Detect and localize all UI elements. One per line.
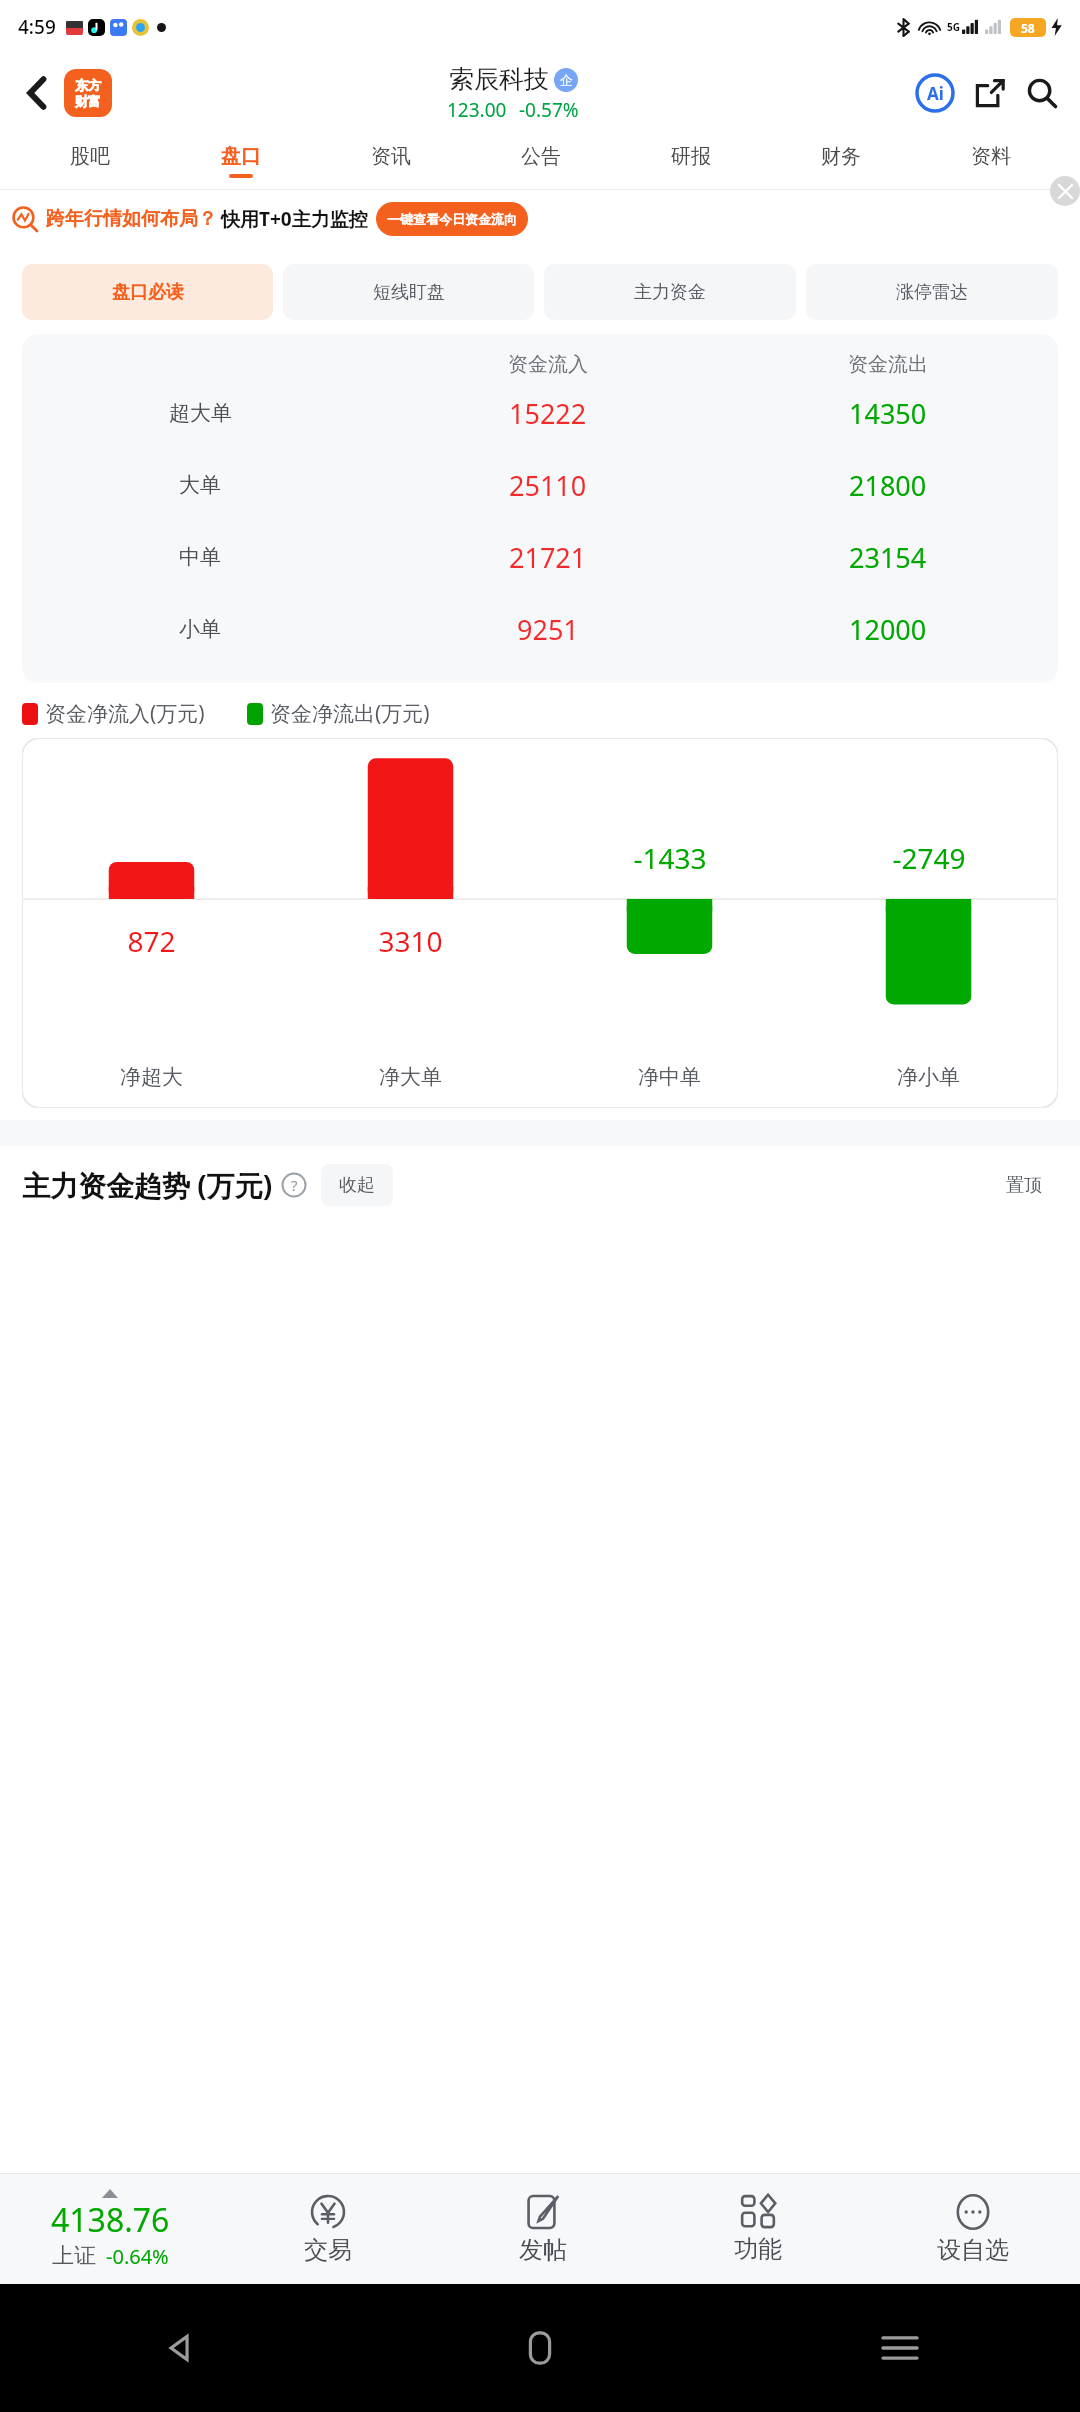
staticText: -0.57% xyxy=(519,97,579,123)
button[interactable]: 功能 xyxy=(650,2174,865,2284)
staticText: -1433 xyxy=(633,839,707,877)
button[interactable]: 大单 xyxy=(22,449,1058,521)
staticText: 资料 xyxy=(971,144,1011,169)
button[interactable]: 置顶 xyxy=(990,1164,1058,1206)
button[interactable]: Close xyxy=(1050,176,1080,206)
staticText: 上证 xyxy=(52,2242,96,2270)
staticText: 股吧 xyxy=(70,144,110,169)
staticText: 15222 xyxy=(509,395,587,432)
staticText: 4138.76 xyxy=(51,2198,170,2242)
staticText: 交易 xyxy=(304,2235,352,2265)
staticText: 58 xyxy=(1021,20,1035,36)
button[interactable]: 中单 xyxy=(22,521,1058,593)
button[interactable]: Back xyxy=(14,70,60,116)
button[interactable]: 跨年行情如何布局？ xyxy=(12,190,1070,248)
staticText: 12000 xyxy=(849,611,927,648)
staticText: 123.00 xyxy=(447,97,507,123)
staticText: 主力资金趋势 (万元) xyxy=(22,1166,273,1204)
staticText: 净超大 xyxy=(120,1064,183,1090)
staticText: 4:59 xyxy=(18,14,56,40)
staticText: 索辰科技 xyxy=(449,64,549,95)
staticText: 大单 xyxy=(179,472,221,498)
staticText: 短线盯盘 xyxy=(373,281,445,304)
staticText: 研报 xyxy=(671,144,711,169)
button[interactable]: 财务 xyxy=(766,132,916,190)
staticText: 25110 xyxy=(509,467,587,504)
button[interactable]: 资料 xyxy=(916,132,1066,190)
staticText: 净小单 xyxy=(897,1064,960,1090)
staticText: 23154 xyxy=(849,539,927,576)
staticText: 置顶 xyxy=(1006,1174,1042,1197)
button[interactable]: 交易 xyxy=(220,2174,435,2284)
staticText: 超大单 xyxy=(169,400,232,426)
staticText: 发帖 xyxy=(519,2235,567,2265)
button[interactable]: 股吧 xyxy=(14,132,165,190)
button[interactable]: 索辰科技 xyxy=(447,64,579,123)
button[interactable]: 涨停雷达 xyxy=(806,264,1058,320)
staticText: Ai xyxy=(927,82,944,105)
staticText: 5G xyxy=(947,20,960,34)
button[interactable]: Search xyxy=(1022,73,1062,113)
button[interactable]: 盘口 xyxy=(165,132,316,190)
staticText: ? xyxy=(291,1175,298,1195)
staticText: 功能 xyxy=(734,2234,782,2264)
staticText: 净大单 xyxy=(379,1064,442,1090)
staticText: 主力资金 xyxy=(634,281,706,304)
button[interactable]: 主力资金 xyxy=(544,264,796,320)
staticText: 9251 xyxy=(517,611,579,648)
button[interactable]: 4138.76 xyxy=(0,2174,220,2284)
button[interactable]: 设自选 xyxy=(865,2174,1080,2284)
staticText: 跨年行情如何布局？ xyxy=(46,207,217,231)
staticText: 盘口必读 xyxy=(112,281,184,304)
staticText: -2749 xyxy=(892,839,966,877)
staticText: 资讯 xyxy=(371,144,411,169)
button[interactable]: 资讯 xyxy=(316,132,466,190)
staticText: 企 xyxy=(560,72,573,88)
staticText: 净中单 xyxy=(638,1064,701,1090)
button[interactable]: 公告 xyxy=(466,132,616,190)
staticText: 资金净流出(万元) xyxy=(270,699,430,728)
button[interactable]: 研报 xyxy=(616,132,766,190)
staticText: 3310 xyxy=(378,922,443,960)
staticText: 公告 xyxy=(521,144,561,169)
staticText: 财富 xyxy=(75,93,101,109)
other: Recents xyxy=(883,2336,917,2360)
staticText: 21800 xyxy=(849,467,927,504)
button[interactable]: 超大单 xyxy=(22,377,1058,449)
staticText: 872 xyxy=(127,922,176,960)
button[interactable]: East Money xyxy=(64,69,112,117)
staticText: 设自选 xyxy=(937,2235,1009,2265)
staticText: 21721 xyxy=(509,539,587,576)
staticText: 资金流入 xyxy=(508,352,588,377)
staticText: 资金流出 xyxy=(848,352,928,377)
button[interactable]: 一键查看今日资金流向 xyxy=(376,202,528,236)
staticText: 财务 xyxy=(821,144,861,169)
button[interactable]: Share xyxy=(970,73,1010,113)
button[interactable]: 盘口必读 xyxy=(22,264,273,320)
staticText: -0.64% xyxy=(106,2243,169,2270)
staticText: 快用T+0主力监控 xyxy=(221,206,368,232)
staticText: 一键查看今日资金流向 xyxy=(387,211,517,227)
button[interactable]: 小单 xyxy=(22,593,1058,665)
staticText: 东方 xyxy=(75,77,101,93)
staticText: 收起 xyxy=(339,1174,375,1197)
button[interactable]: 发帖 xyxy=(435,2174,650,2284)
staticText: 资金净流入(万元) xyxy=(45,699,205,728)
other: Home xyxy=(525,2328,555,2368)
button[interactable]: Help xyxy=(281,1172,307,1198)
staticText: 14350 xyxy=(849,395,927,432)
button[interactable]: 收起 xyxy=(321,1164,393,1206)
staticText: 小单 xyxy=(179,616,221,642)
staticText: 中单 xyxy=(179,544,221,570)
staticText: 涨停雷达 xyxy=(896,281,968,304)
button[interactable]: AI xyxy=(914,72,956,114)
staticText: 盘口 xyxy=(221,144,261,169)
other: Back xyxy=(164,2332,196,2364)
button[interactable]: 短线盯盘 xyxy=(283,264,534,320)
